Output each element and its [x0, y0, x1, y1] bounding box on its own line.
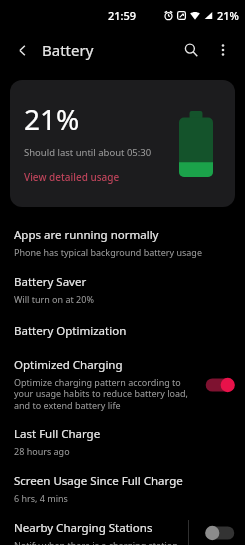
- staticText: View detailed usage: [24, 170, 120, 184]
- staticText: 28 hours ago: [14, 445, 70, 457]
- staticText: 21%: [217, 8, 239, 23]
- button[interactable]: 21%: [10, 80, 235, 207]
- button[interactable]: Optimized Charging: [0, 357, 245, 412]
- button[interactable]: Search: [175, 34, 207, 66]
- button[interactable]: Screen Usage Since Full Charge: [0, 473, 245, 504]
- staticText: Will turn on at 20%: [14, 293, 94, 305]
- staticText: Apps are running normally: [14, 227, 159, 243]
- button[interactable]: Nearby Charging Stations toggle: [203, 522, 237, 544]
- button[interactable]: Battery Optimization: [0, 323, 245, 339]
- button[interactable]: Nearby Charging Stations: [0, 520, 245, 545]
- button[interactable]: More options: [207, 34, 239, 66]
- staticText: Should last until about 05:30: [24, 146, 152, 159]
- staticText: Phone has typical background battery usa…: [14, 246, 202, 258]
- staticText: Optimize charging pattern according to y…: [14, 376, 195, 412]
- staticText: Battery Saver: [14, 274, 87, 290]
- button[interactable]: Back: [8, 36, 36, 64]
- staticText: 21%: [24, 100, 80, 138]
- staticText: Nearby Charging Stations: [14, 520, 153, 536]
- staticText: 6 hrs, 4 mins: [14, 492, 68, 504]
- button[interactable]: Last Full Charge: [0, 426, 245, 457]
- staticText: 21:59: [108, 8, 137, 23]
- staticText: Notify when there is a charging station …: [14, 539, 180, 545]
- staticText: Optimized Charging: [14, 357, 123, 373]
- staticText: Screen Usage Since Full Charge: [14, 473, 183, 489]
- button[interactable]: Battery Saver: [0, 274, 245, 305]
- button[interactable]: Apps are running normally: [0, 227, 245, 258]
- staticText: Last Full Charge: [14, 426, 101, 442]
- button[interactable]: Optimized Charging toggle: [203, 374, 237, 396]
- button[interactable]: View detailed usage: [24, 170, 120, 184]
- staticText: Battery: [42, 40, 94, 60]
- staticText: Battery Optimization: [14, 323, 127, 339]
